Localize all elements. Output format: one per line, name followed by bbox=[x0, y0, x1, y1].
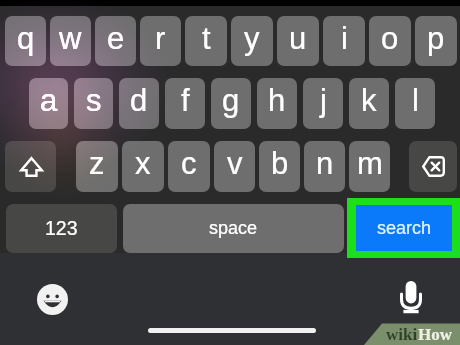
button[interactable]: v bbox=[214, 141, 255, 192]
staticText: q bbox=[17, 21, 35, 56]
staticText: m bbox=[357, 146, 383, 181]
button[interactable]: b bbox=[259, 141, 300, 192]
staticText: How bbox=[418, 325, 452, 344]
staticText: x bbox=[135, 146, 151, 181]
button[interactable]: p bbox=[415, 16, 457, 66]
staticText: d bbox=[130, 83, 148, 118]
button[interactable]: Backspace bbox=[409, 141, 457, 192]
button[interactable]: h bbox=[257, 78, 297, 129]
staticText: p bbox=[427, 21, 445, 56]
button[interactable]: r bbox=[140, 16, 181, 66]
staticText: search bbox=[377, 218, 432, 238]
staticText: s bbox=[86, 83, 102, 118]
staticText: n bbox=[316, 146, 334, 181]
button[interactable]: n bbox=[304, 141, 345, 192]
staticText: j bbox=[320, 83, 327, 118]
button[interactable]: q bbox=[5, 16, 46, 66]
button[interactable]: g bbox=[211, 78, 251, 129]
staticText: l bbox=[412, 83, 419, 118]
staticText: i bbox=[341, 21, 348, 56]
staticText: c bbox=[181, 146, 197, 181]
staticText: u bbox=[289, 21, 307, 56]
staticText: r bbox=[155, 21, 166, 56]
staticText: z bbox=[89, 146, 105, 181]
button[interactable]: u bbox=[277, 16, 319, 66]
button[interactable]: 123 bbox=[6, 204, 117, 253]
staticText: h bbox=[268, 83, 286, 118]
staticText: w bbox=[59, 21, 82, 56]
staticText: t bbox=[202, 21, 211, 56]
staticText: y bbox=[244, 21, 260, 56]
staticText: 123 bbox=[45, 217, 78, 239]
staticText: f bbox=[181, 83, 190, 118]
button[interactable]: f bbox=[165, 78, 205, 129]
staticText: wiki bbox=[386, 325, 418, 344]
staticText: space bbox=[209, 218, 258, 238]
button[interactable]: w bbox=[50, 16, 91, 66]
button[interactable]: c bbox=[168, 141, 210, 192]
button[interactable]: d bbox=[119, 78, 159, 129]
button[interactable]: t bbox=[185, 16, 227, 66]
button[interactable]: a bbox=[29, 78, 68, 129]
button[interactable]: x bbox=[122, 141, 164, 192]
staticText: k bbox=[361, 83, 377, 118]
button[interactable]: search bbox=[356, 205, 452, 251]
staticText: o bbox=[381, 21, 399, 56]
button[interactable]: space bbox=[123, 204, 344, 253]
button[interactable]: y bbox=[231, 16, 273, 66]
staticText: b bbox=[271, 146, 289, 181]
button[interactable]: l bbox=[395, 78, 435, 129]
button[interactable]: z bbox=[76, 141, 118, 192]
button[interactable]: j bbox=[303, 78, 343, 129]
button[interactable]: Voice input bbox=[400, 281, 422, 313]
button[interactable]: o bbox=[369, 16, 411, 66]
button[interactable]: e bbox=[95, 16, 136, 66]
button[interactable]: Shift bbox=[5, 141, 56, 192]
button[interactable]: k bbox=[349, 78, 389, 129]
staticText: g bbox=[222, 83, 240, 118]
button[interactable]: i bbox=[323, 16, 365, 66]
button[interactable]: Emoji keyboard bbox=[37, 284, 68, 315]
staticText: v bbox=[227, 146, 243, 181]
button[interactable]: s bbox=[74, 78, 113, 129]
staticText: a bbox=[40, 83, 58, 118]
staticText: e bbox=[107, 21, 125, 56]
button[interactable]: m bbox=[349, 141, 390, 192]
